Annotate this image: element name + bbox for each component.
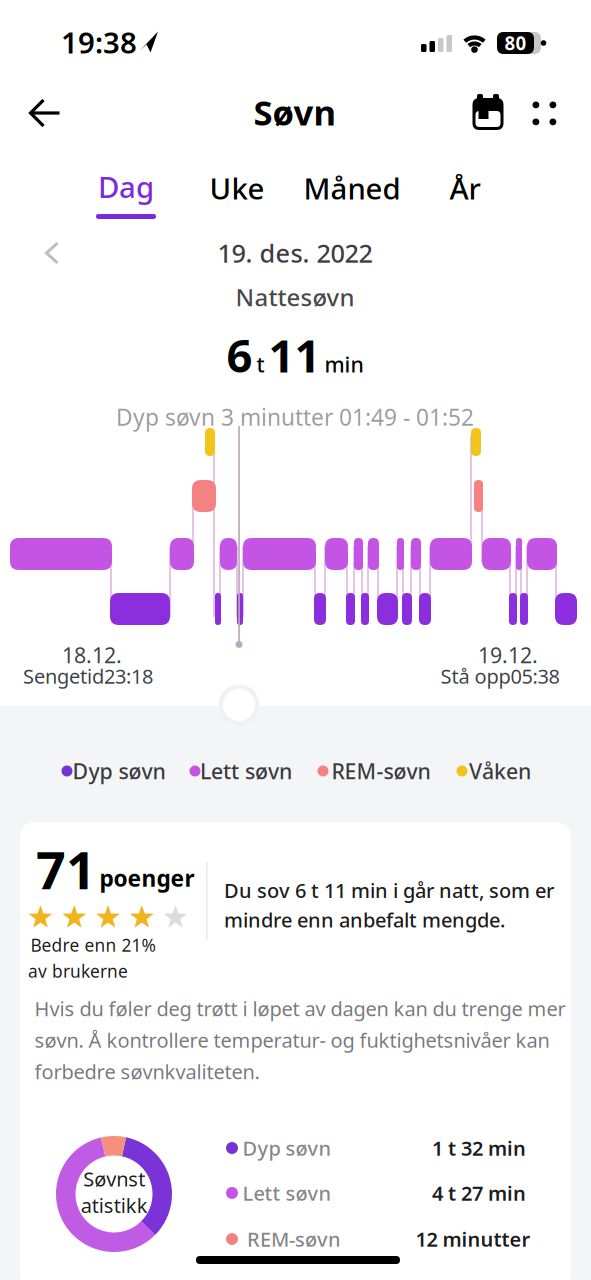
staticText: 19:38 (61, 22, 137, 61)
staticText: 6 (226, 325, 252, 385)
staticText: Dyp søvn (242, 1135, 331, 1161)
staticText: 19.12. (478, 641, 538, 669)
button[interactable]: År (437, 166, 493, 210)
staticText: Nattesøvn (235, 281, 354, 313)
staticText: Måned (303, 168, 400, 207)
staticText: REM-søvn (247, 1226, 341, 1252)
staticText: min (324, 350, 363, 378)
staticText: Våken (469, 757, 531, 785)
staticText: t (256, 350, 264, 378)
staticText: Bedre enn 21% (30, 933, 155, 956)
button[interactable]: Previous day (34, 231, 69, 275)
staticText: Lett søvn (200, 757, 292, 785)
staticText: Dyp søvn 3 minutter 01:49 - 01:52 (116, 402, 474, 432)
staticText: Stå opp05:38 (440, 663, 559, 689)
staticText: REM-søvn (331, 757, 430, 785)
staticText: 11 (268, 325, 320, 385)
staticText: År (449, 168, 480, 207)
staticText: Uke (209, 168, 264, 207)
staticText: Dag (98, 167, 154, 206)
staticText: 19. des. 2022 (217, 236, 372, 270)
button[interactable]: Calendar (467, 89, 508, 135)
staticText: Søvnst atistikk (80, 1165, 147, 1218)
staticText: 12 minutter (415, 1226, 530, 1252)
button[interactable]: Dag (86, 169, 166, 217)
staticText: 1 t 32 min (432, 1135, 526, 1161)
staticText: Du sov 6 t 11 min i går natt, som er min… (224, 877, 554, 933)
button[interactable]: More (523, 92, 565, 134)
staticText: poenger (99, 863, 194, 893)
staticText: Sengetid23:18 (23, 663, 153, 689)
staticText: 80 (504, 31, 526, 55)
button[interactable]: Back (19, 91, 70, 135)
staticText: 4 t 27 min (432, 1180, 526, 1206)
button[interactable]: Uke (199, 166, 275, 210)
staticText: Hvis du føler deg trøtt i løpet av dagen… (34, 995, 565, 1085)
staticText: Søvn (253, 89, 336, 135)
staticText: Lett søvn (242, 1180, 331, 1206)
staticText: 71 (36, 834, 96, 904)
staticText: av brukerne (28, 959, 128, 982)
staticText: Dyp søvn (72, 757, 165, 785)
staticText: 18.12. (62, 641, 122, 669)
button[interactable]: Måned (297, 166, 407, 210)
